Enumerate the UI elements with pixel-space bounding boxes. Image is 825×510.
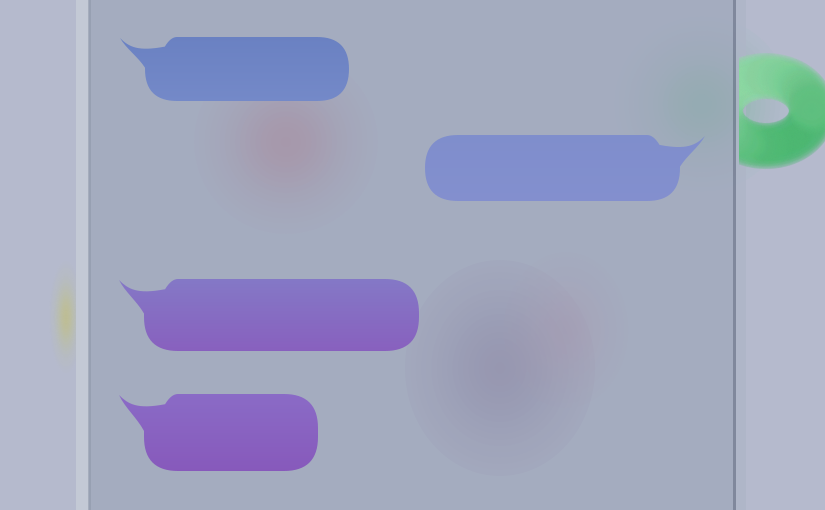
button[interactable]: Message bubble: [120, 37, 349, 101]
button[interactable]: Message bubble: [119, 394, 318, 471]
button[interactable]: Message bubble: [425, 135, 705, 201]
button[interactable]: Message bubble: [119, 279, 419, 351]
